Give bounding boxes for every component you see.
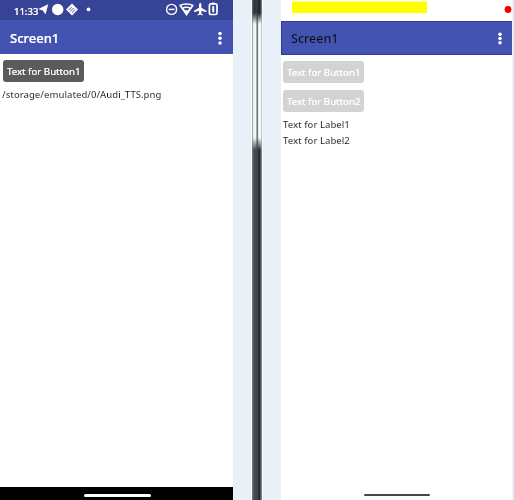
staticText: Screen1 xyxy=(10,29,60,47)
staticText: Text for Button1 xyxy=(7,65,81,78)
staticText: Text for Button2 xyxy=(287,95,361,108)
staticText: Screen1 xyxy=(291,30,339,47)
staticText: /storage/emulated/0/Audi_TTS.png xyxy=(2,88,162,101)
button[interactable]: Text for Button1 xyxy=(283,61,364,83)
staticText: Text for Button1 xyxy=(287,66,361,79)
button[interactable]: Text for Button1 xyxy=(3,60,84,82)
staticText: Text for Label1 xyxy=(283,118,350,131)
staticText: 11:33 xyxy=(14,5,39,18)
staticText: Text for Label2 xyxy=(283,134,350,147)
button[interactable]: More options xyxy=(207,24,233,50)
button[interactable]: More options xyxy=(487,25,513,51)
button[interactable]: Text for Button2 xyxy=(283,90,364,112)
